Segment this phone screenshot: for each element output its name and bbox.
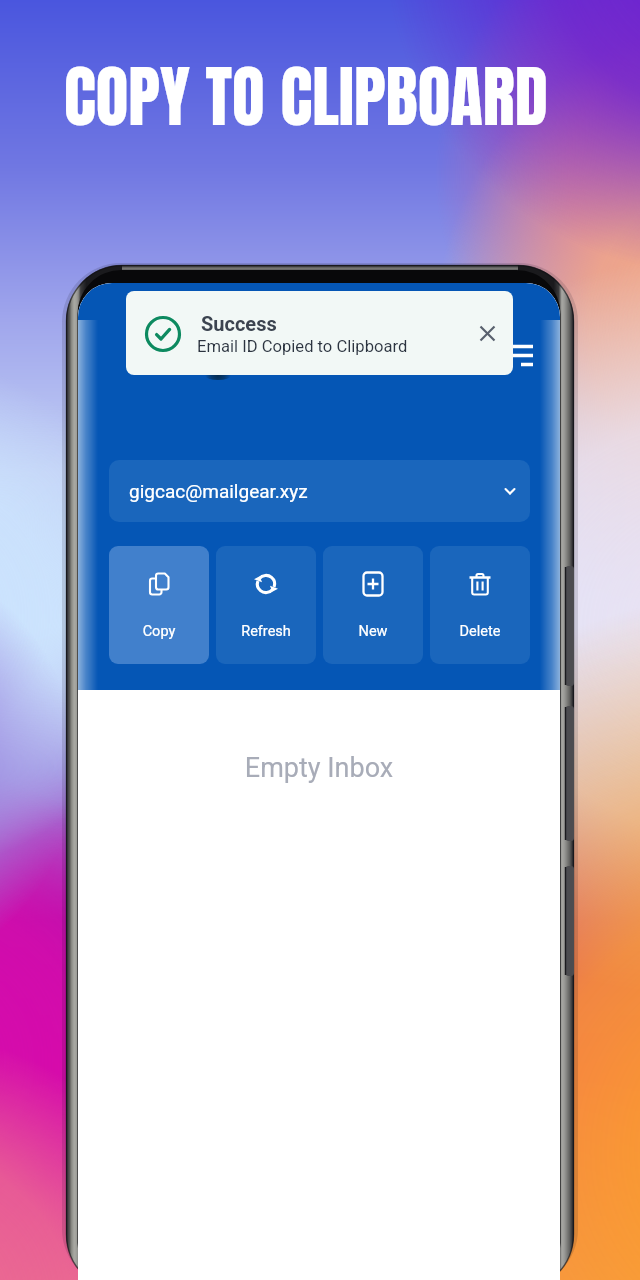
staticText: Empty Inbox bbox=[78, 752, 560, 784]
button[interactable]: New bbox=[323, 546, 423, 664]
staticText: Delete bbox=[430, 623, 530, 640]
button[interactable]: Copy bbox=[109, 546, 209, 664]
staticText: COPY TO CLIPBOARD bbox=[64, 46, 548, 147]
button[interactable]: Menu bbox=[503, 335, 543, 375]
button[interactable]: gigcac@mailgear.xyz bbox=[109, 460, 530, 522]
button[interactable]: Delete bbox=[430, 546, 530, 664]
staticText: Success bbox=[201, 312, 277, 335]
button[interactable]: Refresh bbox=[216, 546, 316, 664]
staticText: Copy bbox=[109, 623, 209, 640]
button[interactable]: Close bbox=[469, 315, 505, 351]
staticText: New bbox=[323, 623, 423, 640]
staticText: Email ID Copied to Clipboard bbox=[197, 337, 408, 356]
staticText: Refresh bbox=[216, 623, 316, 640]
staticText: gigcac@mailgear.xyz bbox=[129, 480, 308, 502]
